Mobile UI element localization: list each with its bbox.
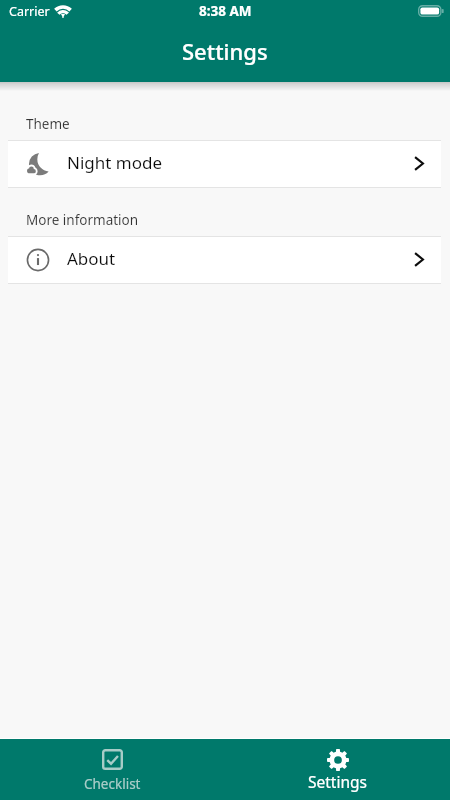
staticText: About [67, 247, 116, 270]
staticText: 8:38 AM [199, 2, 252, 20]
staticText: Night mode [67, 151, 163, 174]
staticText: Checklist [84, 775, 141, 793]
staticText: Theme [26, 115, 70, 133]
staticText: Settings [182, 36, 268, 66]
staticText: Settings [308, 771, 367, 792]
staticText: Carrier [9, 3, 50, 20]
button[interactable]: Settings [225, 739, 450, 800]
button[interactable]: About [8, 236, 441, 284]
button[interactable]: Checklist [0, 739, 225, 800]
staticText: More information [26, 211, 139, 229]
button[interactable]: Night mode [8, 140, 441, 188]
